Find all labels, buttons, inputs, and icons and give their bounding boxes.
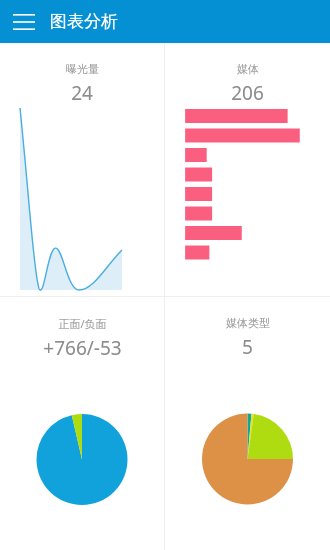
- staticText: 24: [71, 80, 93, 106]
- staticText: 媒体类型: [226, 316, 270, 330]
- staticText: 曝光量: [66, 62, 99, 76]
- staticText: +766/-53: [43, 335, 122, 361]
- button[interactable]: 正面/负面: [0, 297, 164, 550]
- button[interactable]: 媒体: [165, 43, 330, 296]
- staticText: 206: [231, 80, 264, 106]
- button[interactable]: 曝光量: [0, 43, 164, 296]
- button[interactable]: 媒体类型: [165, 297, 330, 550]
- button[interactable]: Menu: [8, 6, 40, 38]
- staticText: 5: [242, 334, 253, 360]
- staticText: 媒体: [237, 62, 259, 76]
- staticText: 图表分析: [50, 11, 118, 32]
- staticText: 正面/负面: [58, 316, 107, 331]
